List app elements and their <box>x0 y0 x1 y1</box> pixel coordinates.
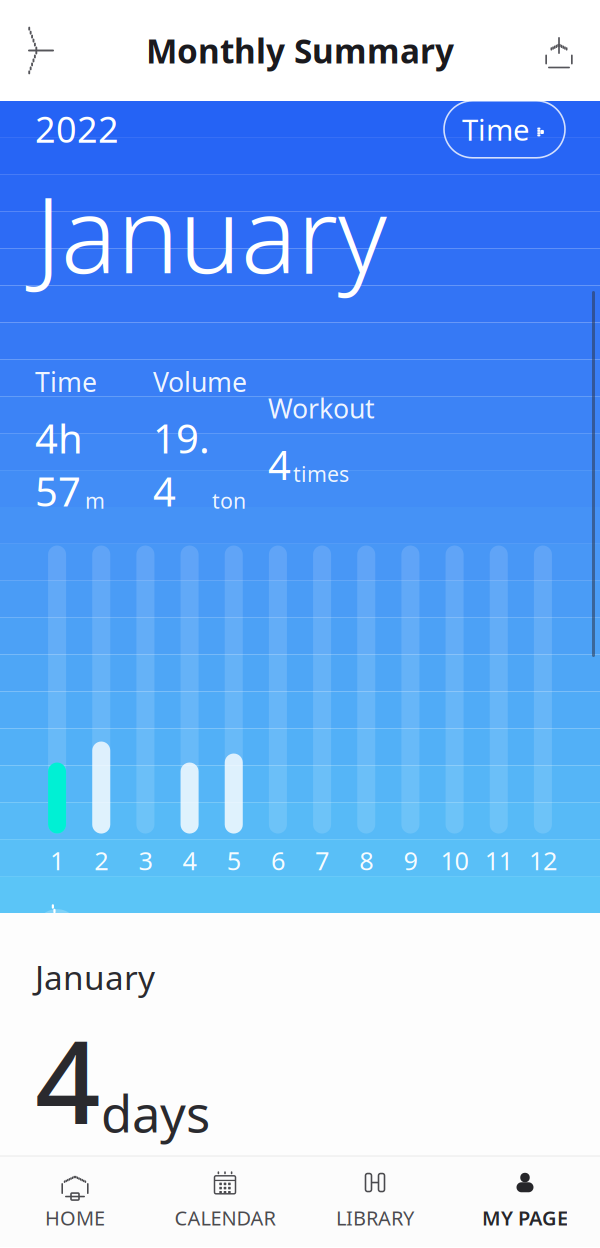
staticText: 2021 <box>93 911 165 951</box>
button[interactable]: Back <box>14 23 68 77</box>
staticText: 4 <box>268 438 291 491</box>
button[interactable]: CALENDAR <box>150 1155 300 1247</box>
staticText: LIBRARY <box>336 1204 414 1231</box>
staticText: days <box>101 1079 210 1147</box>
staticText: 19.4 <box>153 411 210 517</box>
button[interactable]: LIBRARY <box>300 1155 450 1247</box>
staticText: Monthly Summary <box>146 28 454 73</box>
staticText: HOME <box>45 1204 105 1231</box>
staticText: Workout <box>268 390 375 426</box>
staticText: Time <box>35 364 97 399</box>
staticText: CALENDAR <box>174 1204 275 1231</box>
staticText: Time <box>462 110 530 149</box>
staticText: January <box>35 164 387 302</box>
staticText: January <box>35 955 155 999</box>
staticText: 4 <box>35 1003 101 1156</box>
staticText: 8 <box>359 843 373 877</box>
staticText: 4h 57 <box>35 411 83 517</box>
staticText: times <box>293 460 349 488</box>
button[interactable]: Share <box>532 23 586 77</box>
button[interactable]: MY PAGE <box>450 1155 600 1247</box>
button[interactable]: 2021 <box>35 909 165 953</box>
staticText: 10 <box>441 843 469 877</box>
staticText: 6 <box>271 843 285 877</box>
staticText: 9 <box>403 843 417 877</box>
staticText: 12 <box>529 843 557 877</box>
staticText: 2022 <box>35 105 119 153</box>
staticText: Volume <box>153 364 247 399</box>
staticText: 5 <box>227 843 241 877</box>
staticText: ton <box>212 486 246 514</box>
staticText: 11 <box>485 843 513 877</box>
button[interactable]: Time <box>444 101 565 158</box>
staticText: 2 <box>94 843 108 877</box>
staticText: m <box>85 486 105 514</box>
staticText: 7 <box>315 843 329 877</box>
staticText: 1 <box>50 843 64 877</box>
button[interactable]: HOME <box>0 1155 150 1247</box>
staticText: 3 <box>138 843 152 877</box>
staticText: MY PAGE <box>482 1204 568 1231</box>
staticText: 4 <box>183 843 197 877</box>
